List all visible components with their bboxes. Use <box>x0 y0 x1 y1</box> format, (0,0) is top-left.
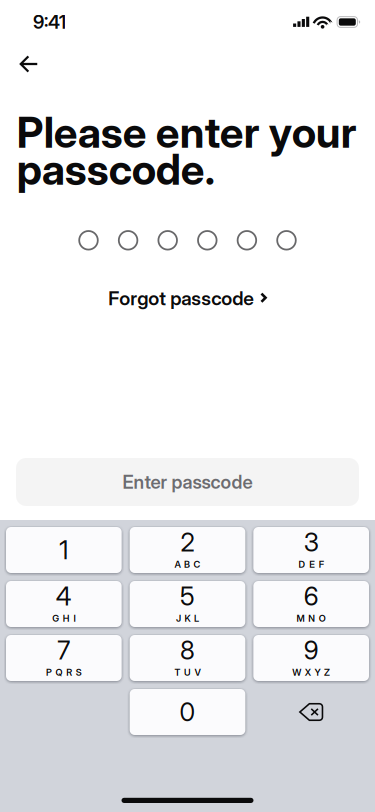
staticText: 0 <box>179 697 195 727</box>
staticText: passcode. <box>17 144 215 195</box>
button[interactable]: 6 <box>253 581 369 627</box>
button[interactable]: 0 <box>130 689 245 735</box>
button[interactable]: 9 <box>253 635 369 681</box>
button[interactable]: Delete <box>253 689 369 735</box>
staticText: 1 <box>59 535 68 565</box>
button[interactable]: 5 <box>130 581 245 627</box>
button[interactable]: 2 <box>130 527 245 573</box>
button[interactable]: 7 <box>6 635 122 681</box>
staticText: GHI <box>52 613 75 624</box>
staticText: JKL <box>176 613 199 624</box>
staticText: Enter passcode <box>122 471 252 493</box>
button[interactable]: 8 <box>130 635 245 681</box>
staticText: MNO <box>297 613 326 624</box>
staticText: 3 <box>304 527 319 558</box>
button[interactable]: 4 <box>6 581 122 627</box>
staticText: 6 <box>304 581 319 612</box>
staticText: PQRS <box>46 667 82 678</box>
button[interactable]: Forgot passcode <box>98 278 277 319</box>
staticText: 4 <box>56 581 72 612</box>
staticText: TUV <box>174 667 201 678</box>
staticText: 5 <box>180 581 195 612</box>
button[interactable]: Back <box>7 44 51 84</box>
staticText: Please enter your <box>17 107 357 158</box>
staticText: 9:41 <box>33 11 66 33</box>
staticText: ABC <box>174 559 201 570</box>
staticText: 9 <box>304 635 319 666</box>
staticText: 7 <box>57 635 70 666</box>
button[interactable]: 1 <box>6 527 122 573</box>
staticText: 2 <box>180 527 194 558</box>
staticText: Forgot passcode <box>108 287 254 310</box>
staticText: DEF <box>299 559 324 570</box>
button[interactable]: 3 <box>253 527 369 573</box>
staticText: WXYZ <box>292 667 330 678</box>
staticText: 8 <box>180 635 195 666</box>
